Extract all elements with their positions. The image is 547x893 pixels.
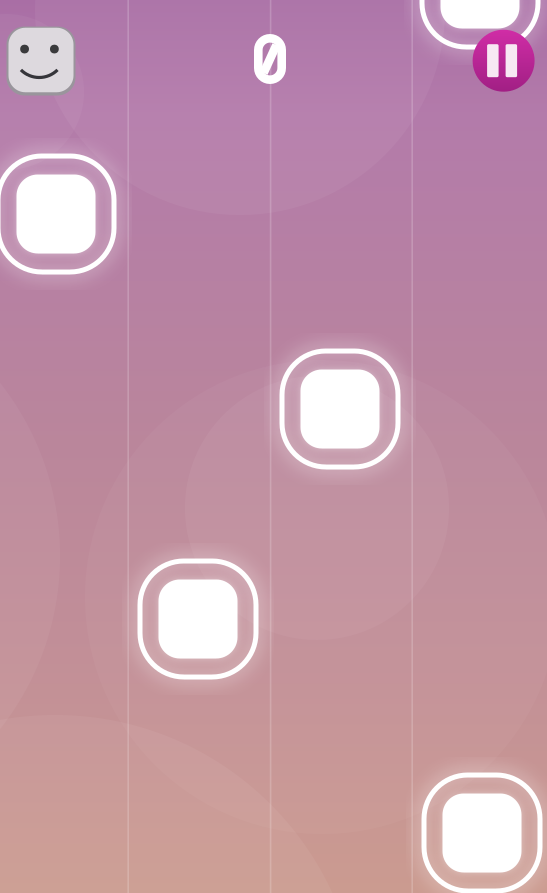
button[interactable]: Profile bbox=[6, 26, 75, 95]
button[interactable]: Pause bbox=[473, 30, 535, 92]
